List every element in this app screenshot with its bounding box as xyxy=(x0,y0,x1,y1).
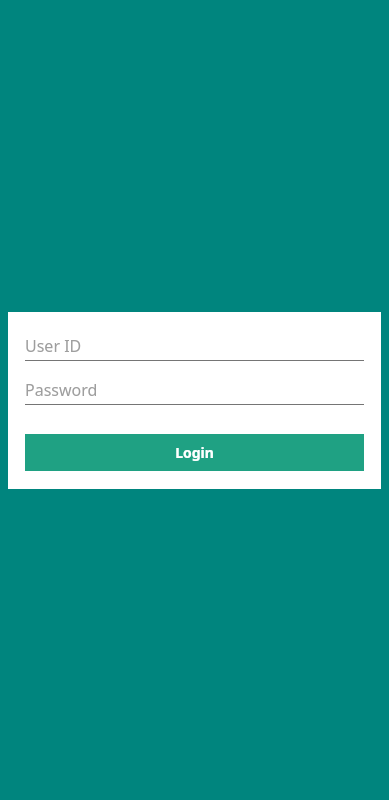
staticText: User ID xyxy=(25,335,82,357)
button[interactable]: Login xyxy=(25,434,364,471)
button[interactable]: User ID xyxy=(25,331,364,361)
staticText: Login xyxy=(175,443,214,462)
staticText: Password xyxy=(25,379,98,401)
button[interactable]: Password xyxy=(25,375,364,405)
